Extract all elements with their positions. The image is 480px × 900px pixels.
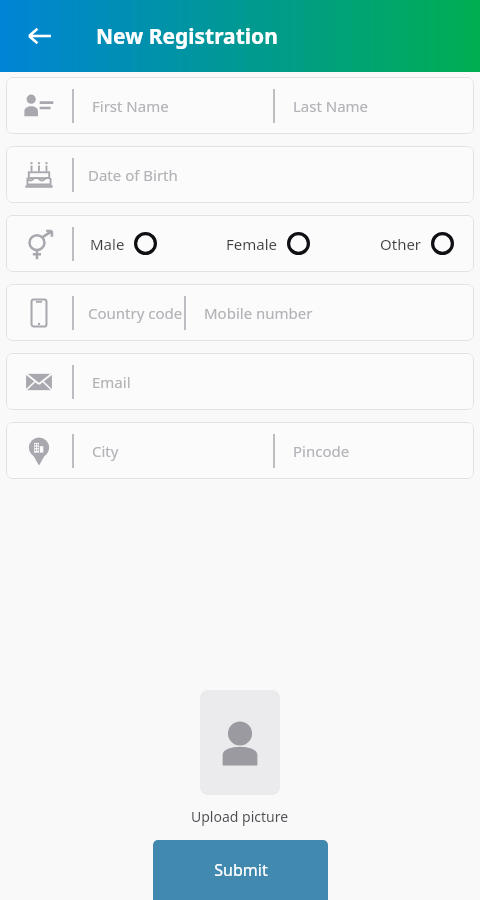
staticText: Female [226,234,278,254]
button[interactable]: Date of Birth [6,146,474,203]
staticText: City [92,441,273,461]
staticText: Upload picture [191,807,289,826]
button[interactable]: Female [222,226,314,261]
staticText: New Registration [96,22,278,51]
staticText: Last Name [293,96,474,116]
button[interactable]: Male [6,215,474,272]
staticText: Submit [214,859,268,881]
button[interactable]: First Name [6,77,474,134]
button[interactable]: Submit [153,840,328,900]
button[interactable]: Country code [6,284,474,341]
button[interactable]: Other [376,226,458,261]
staticText: Country code [88,303,183,323]
button[interactable]: Email [6,353,474,410]
staticText: Mobile number [204,303,474,323]
staticText: Date of Birth [88,165,474,185]
staticText: First Name [92,96,273,116]
staticText: Other [380,234,422,254]
staticText: Male [90,234,125,254]
staticText: Email [92,372,474,392]
button[interactable]: Upload picture [200,690,280,795]
button[interactable]: Male [86,226,161,261]
button[interactable]: City [6,422,474,479]
staticText: Pincode [293,441,474,461]
button[interactable]: Back [16,12,64,60]
